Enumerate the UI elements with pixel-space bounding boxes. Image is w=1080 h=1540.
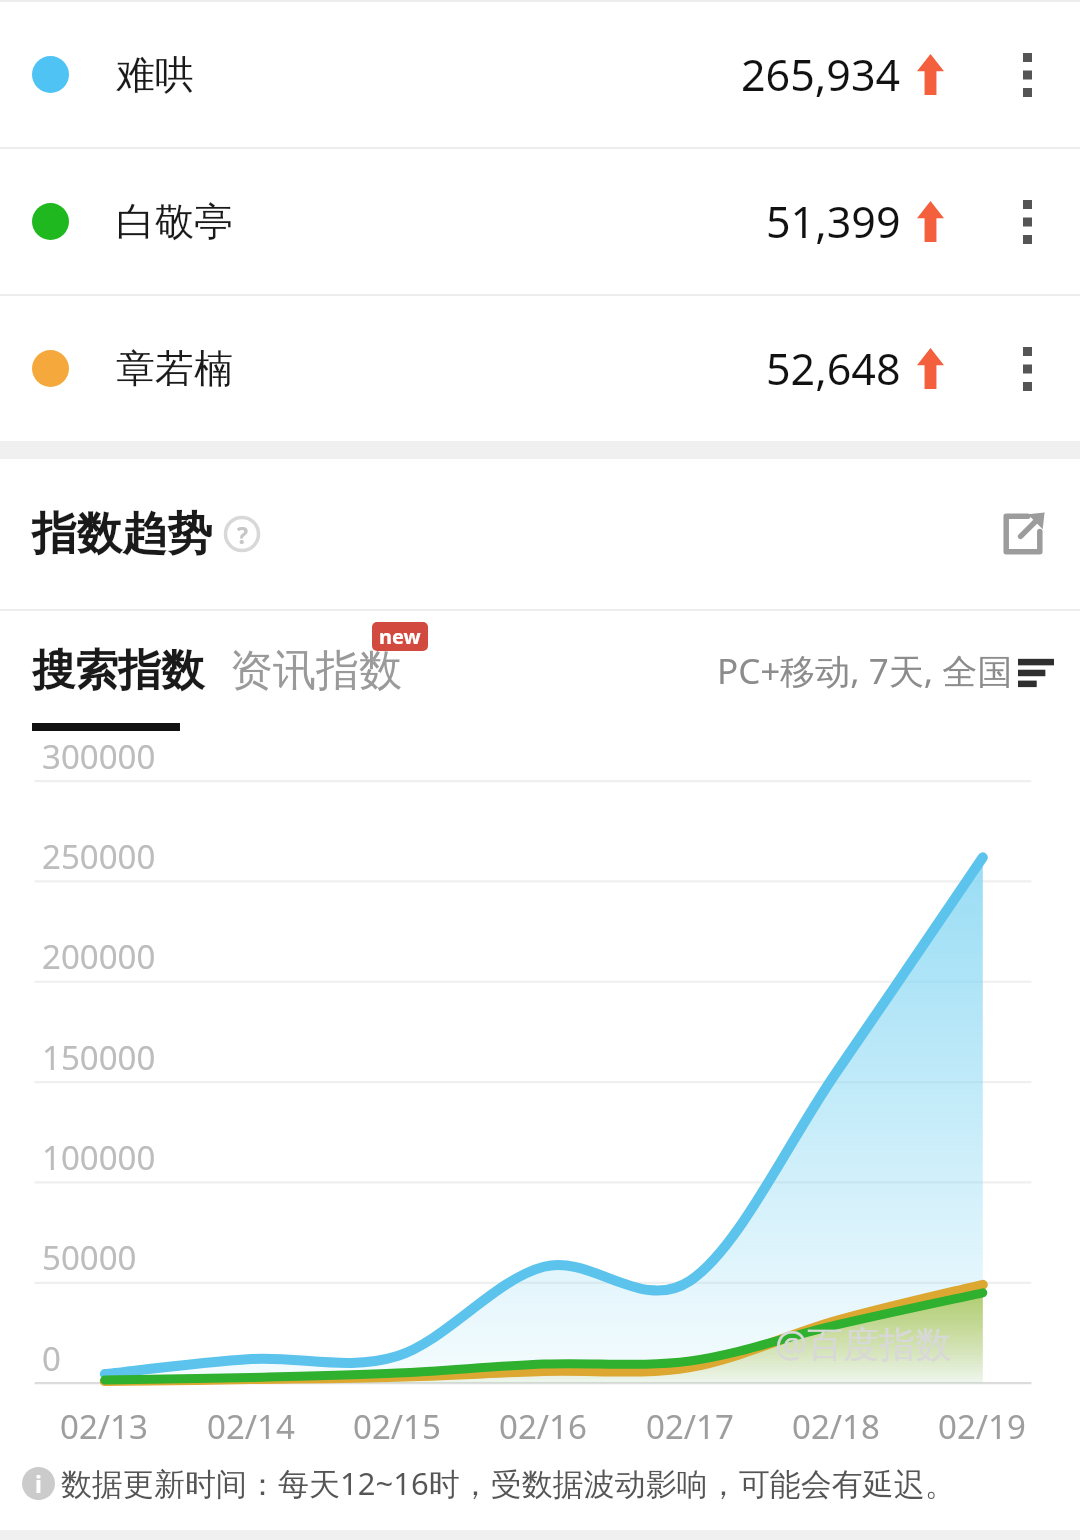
staticText: 02/13 — [60, 1404, 148, 1449]
button[interactable]: 资讯指数 — [230, 644, 402, 698]
staticText: 搜索指数 — [32, 644, 204, 698]
staticText: 02/19 — [938, 1404, 1026, 1449]
staticText: 300000 — [42, 734, 156, 779]
button[interactable]: 章若楠 — [0, 296, 1080, 441]
staticText: new — [379, 623, 421, 650]
staticText: 资讯指数 — [230, 644, 402, 698]
button[interactable]: 难哄 — [0, 2, 1080, 147]
button[interactable]: More — [996, 338, 1058, 400]
button[interactable]: More — [996, 44, 1058, 106]
staticText: 02/18 — [792, 1404, 880, 1449]
staticText: 200000 — [42, 934, 156, 979]
staticText: PC+移动, 7天, 全国 — [717, 647, 1013, 695]
button[interactable]: PC+移动, 7天, 全国 — [717, 647, 1054, 695]
staticText: 02/14 — [207, 1404, 295, 1449]
staticText: 02/17 — [646, 1404, 734, 1449]
button[interactable]: Help — [224, 516, 260, 552]
staticText: 52,648 — [766, 339, 901, 398]
staticText: 02/15 — [353, 1404, 441, 1449]
staticText: 100000 — [42, 1135, 156, 1180]
staticText: 难哄 — [116, 50, 194, 99]
staticText: 0 — [42, 1336, 61, 1381]
staticText: 150000 — [42, 1035, 156, 1080]
staticText: 指数趋势 — [32, 506, 212, 563]
staticText: 数据更新时间：每天12~16时，受数据波动影响，可能会有延迟。 — [61, 1462, 956, 1504]
staticText: 白敬亭 — [116, 197, 233, 246]
staticText: 章若楠 — [116, 344, 233, 393]
staticText: 50000 — [42, 1235, 137, 1280]
staticText: ? — [237, 519, 248, 550]
button[interactable]: More — [996, 191, 1058, 253]
staticText: 02/16 — [499, 1404, 587, 1449]
button[interactable]: Open in browser — [990, 501, 1056, 567]
staticText: i — [35, 1468, 42, 1499]
staticText: 51,399 — [766, 192, 901, 251]
staticText: @百度指数 — [775, 1319, 952, 1368]
button[interactable]: 搜索指数 — [32, 644, 204, 698]
staticText: 250000 — [42, 834, 156, 879]
button[interactable]: 白敬亭 — [0, 149, 1080, 294]
staticText: 265,934 — [741, 45, 901, 104]
